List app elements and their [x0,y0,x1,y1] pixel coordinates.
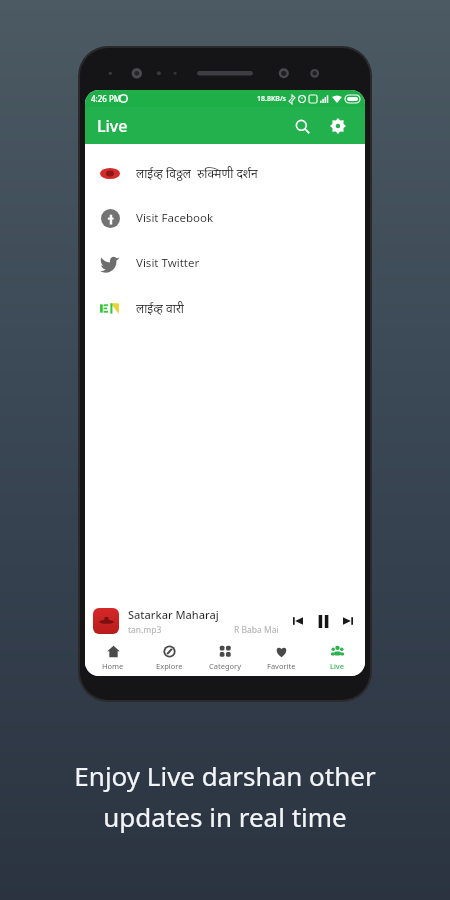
staticText: लाईव्ह वारी [136,300,184,316]
staticText: Live [97,115,128,137]
staticText: Visit Facebook [136,210,214,226]
button[interactable]: Settings [323,111,353,141]
staticText: Live [330,661,344,671]
button[interactable]: Explore [141,640,197,676]
staticText: Satarkar Maharaj [128,607,219,622]
staticText: 4:26 PM [91,93,122,104]
staticText: updates in real time [103,799,347,834]
staticText: Enjoy Live darshan other [74,758,376,793]
staticText: लाईव्ह विठ्ठल रुक्मिणी दर्शन [136,165,258,181]
button[interactable]: Home [85,640,141,676]
button[interactable]: Favorite [253,640,309,676]
button[interactable]: Previous [289,612,307,630]
button[interactable]: Search [287,111,317,141]
button[interactable]: लाईव्ह वारी [85,285,365,330]
button[interactable]: Live [309,640,365,676]
staticText: Favorite [267,661,296,671]
button[interactable]: Pause [313,611,333,631]
button[interactable]: Satarkar Maharaj [85,602,365,640]
staticText: Visit Twitter [136,255,200,271]
button[interactable]: Category [197,640,253,676]
button[interactable]: Next [339,612,357,630]
button[interactable]: Visit Twitter [85,240,365,285]
staticText: Home [102,661,124,671]
staticText: Category [209,661,241,671]
button[interactable]: Visit Facebook [85,195,365,240]
staticText: R Baba Mai [234,624,279,636]
button[interactable]: लाईव्ह विठ्ठल रुक्मिणी दर्शन [85,150,365,195]
staticText: 18.8KB/s [257,94,287,104]
staticText: tan.mp3 [128,624,162,636]
staticText: Explore [156,661,183,671]
